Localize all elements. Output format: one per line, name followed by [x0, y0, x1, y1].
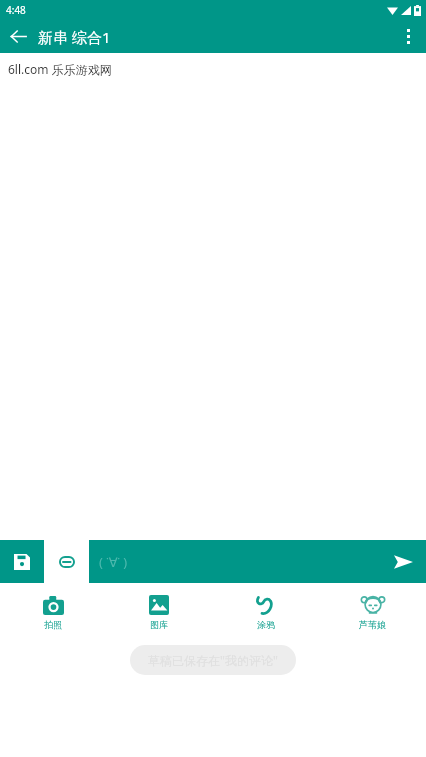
button[interactable]: More options [390, 20, 426, 53]
staticText: 4:48 [6, 3, 26, 17]
button[interactable]: Attach [44, 540, 89, 583]
button[interactable]: Back [0, 20, 36, 53]
button[interactable]: 图库 [106, 583, 212, 640]
staticText: 涂鸦 [257, 619, 275, 630]
staticText: 芦苇娘 [359, 619, 386, 630]
staticText: ( ˙∀˙ ) [99, 553, 128, 571]
button[interactable]: ( ˙∀˙ ) [89, 540, 380, 583]
button[interactable]: Save draft [0, 540, 44, 583]
staticText: 新串 综合1 [38, 27, 111, 47]
button[interactable]: 拍照 [0, 583, 106, 640]
staticText: 6ll.com 乐乐游戏网 [8, 61, 112, 77]
button[interactable]: 芦苇娘 [319, 583, 426, 640]
button[interactable]: 涂鸦 [212, 583, 319, 640]
button[interactable]: Send [380, 540, 426, 583]
staticText: 图库 [150, 619, 168, 630]
staticText: 拍照 [44, 619, 62, 630]
staticText: 草稿已保存在"我的评论" [148, 652, 278, 668]
